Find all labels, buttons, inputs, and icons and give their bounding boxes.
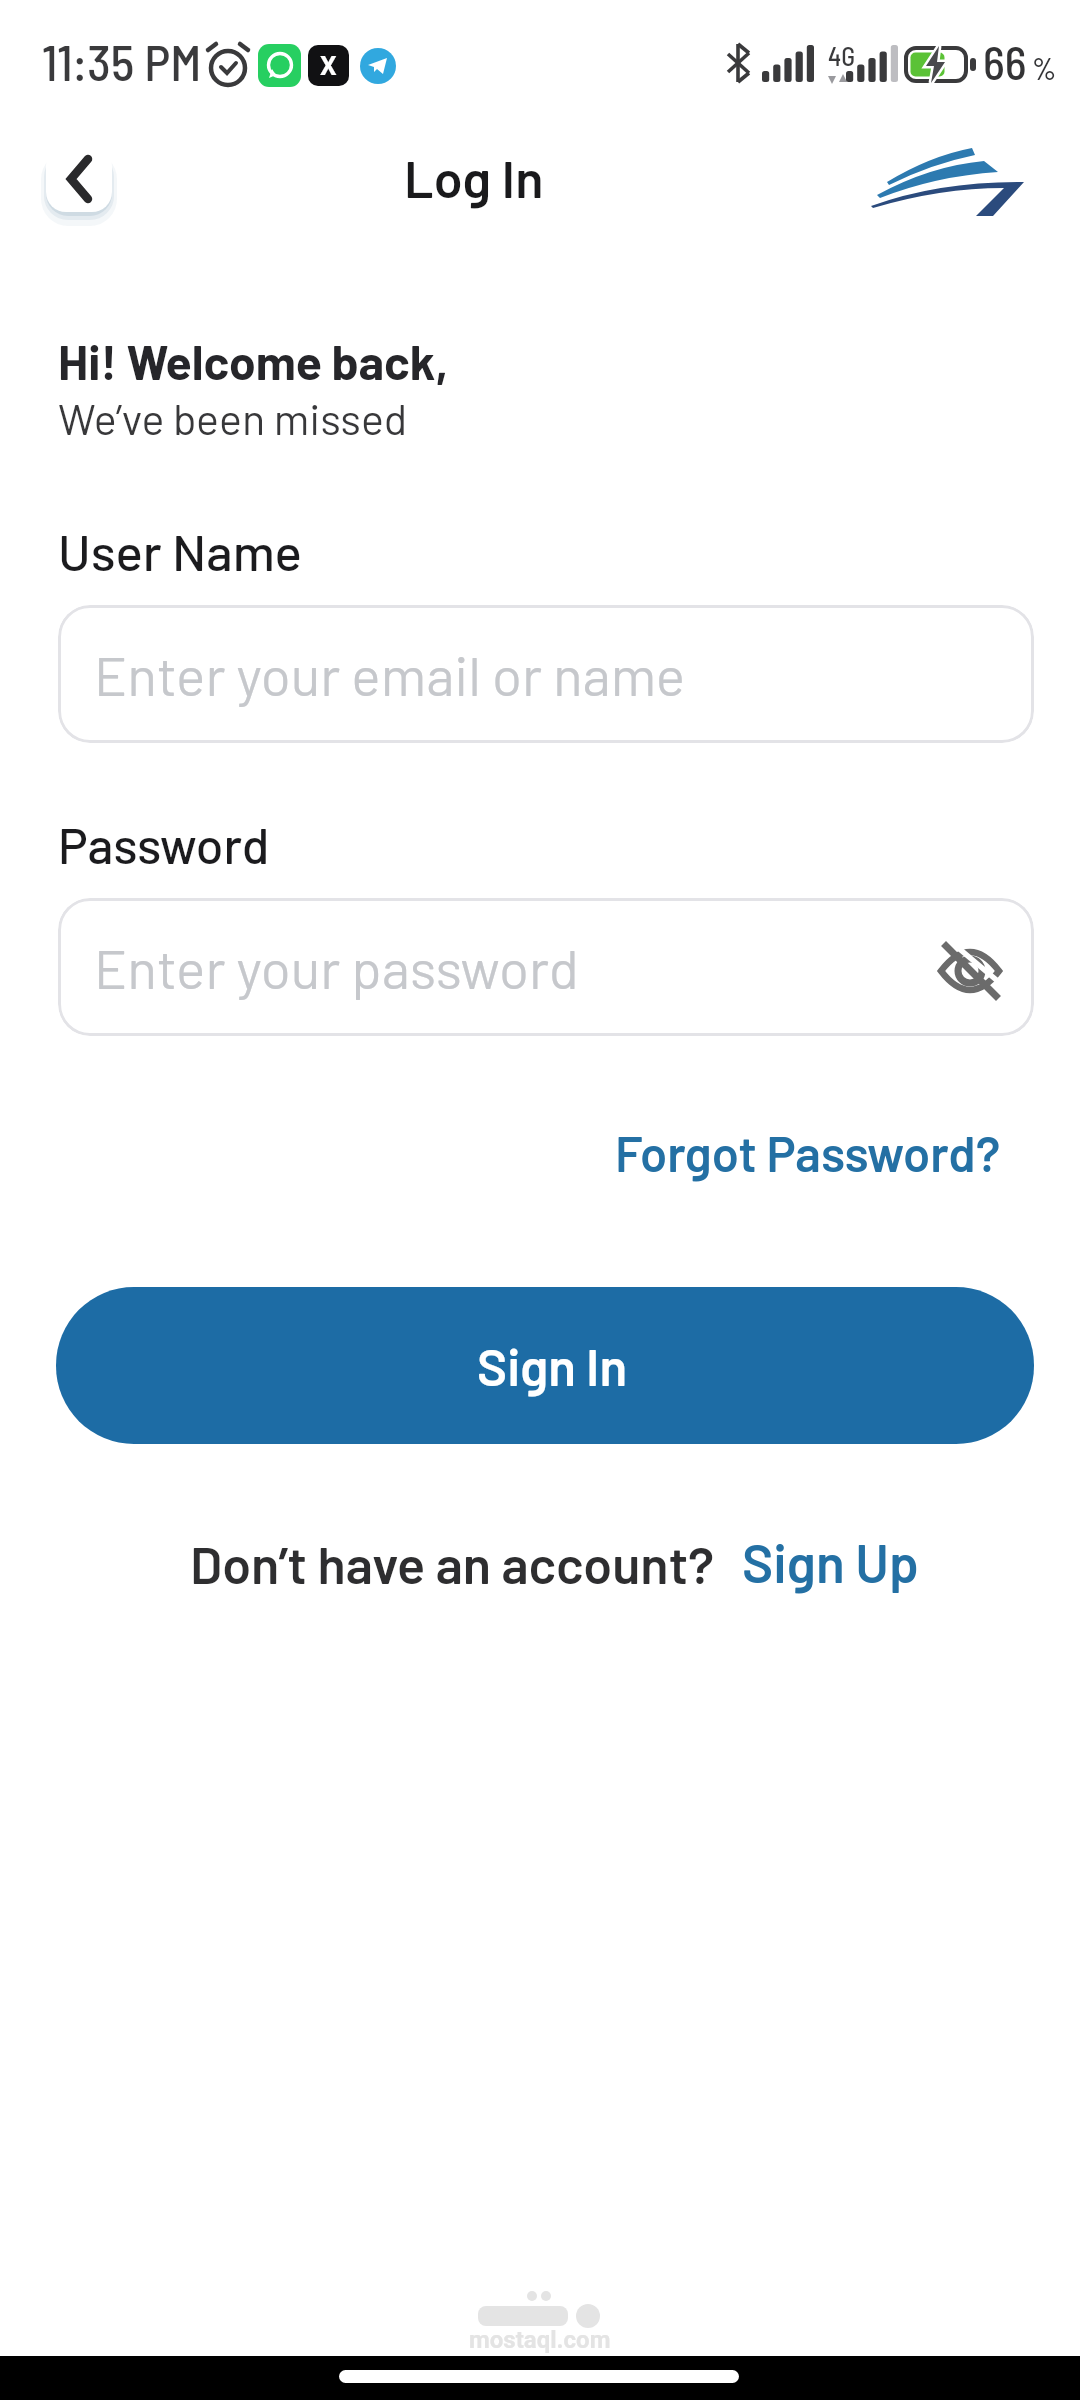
button[interactable]: Sign Up (742, 1530, 919, 1594)
button[interactable]: Enter your email or name (58, 605, 1034, 743)
staticText: Don’t have an account? (190, 1532, 715, 1594)
button[interactable] (46, 146, 112, 212)
button[interactable]: Sign In (56, 1287, 1034, 1444)
staticText: Sign Up (742, 1530, 919, 1594)
staticText: Enter your email or name (94, 641, 686, 707)
staticText: 11:35 PM (42, 31, 202, 91)
staticText: We’ve been missed (58, 392, 408, 444)
staticText: X (320, 51, 337, 81)
staticText: Forgot Password? (615, 1123, 1001, 1182)
staticText: mostaql.com (469, 2326, 611, 2354)
staticText: User Name (58, 520, 302, 581)
staticText: 66 (983, 34, 1027, 89)
staticText: % (1032, 50, 1057, 86)
staticText: 4G (828, 40, 856, 71)
button[interactable]: Enter your password (58, 898, 1034, 1036)
staticText: Sign In (477, 1335, 628, 1396)
staticText: Password (58, 814, 270, 874)
button[interactable]: Forgot Password? (615, 1123, 1001, 1182)
staticText: Log In (404, 146, 544, 208)
staticText: Hi! Welcome back, (58, 332, 449, 390)
staticText: Enter your password (94, 934, 579, 1000)
